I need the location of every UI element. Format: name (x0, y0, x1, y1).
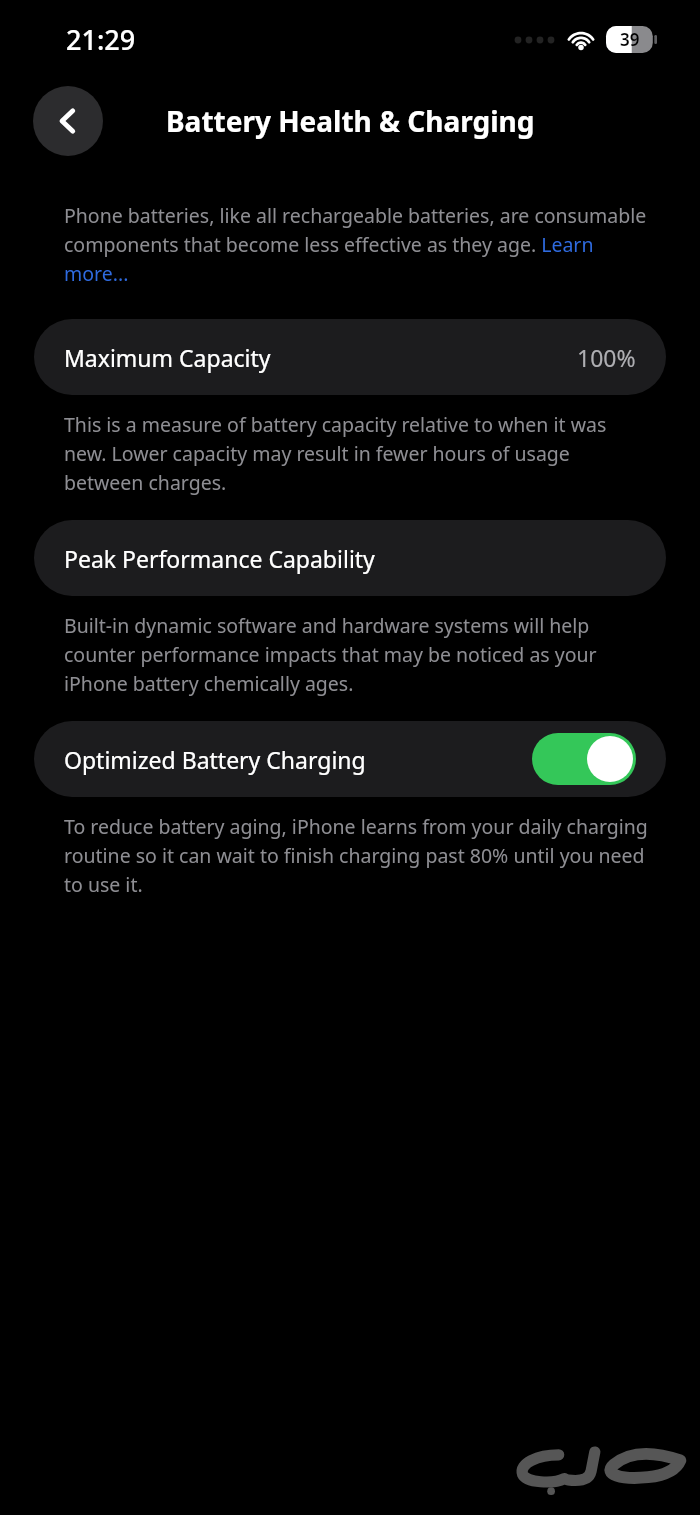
staticText: 100% (577, 342, 636, 373)
staticText: To reduce battery aging, iPhone learns f… (64, 813, 648, 897)
staticText: Optimized Battery Charging (64, 744, 366, 775)
staticText: Battery Health & Charging (166, 102, 535, 140)
button[interactable]: Optimized Battery Charging (34, 721, 666, 797)
staticText: 21:29 (66, 21, 136, 58)
staticText: This is a measure of battery capacity re… (64, 411, 648, 495)
staticText: Maximum Capacity (64, 342, 271, 373)
button[interactable]: Back (33, 86, 103, 156)
staticText: Peak Performance Capability (64, 543, 375, 574)
staticText: Phone batteries, like all rechargeable b… (64, 202, 648, 286)
staticText: Built-in dynamic software and hardware s… (64, 612, 648, 696)
button[interactable]: Peak Performance Capability (34, 520, 666, 596)
button[interactable]: Optimized Battery Charging toggle, on (532, 733, 636, 785)
staticText: 39 (620, 28, 640, 51)
button[interactable]: Maximum Capacity (34, 319, 666, 395)
